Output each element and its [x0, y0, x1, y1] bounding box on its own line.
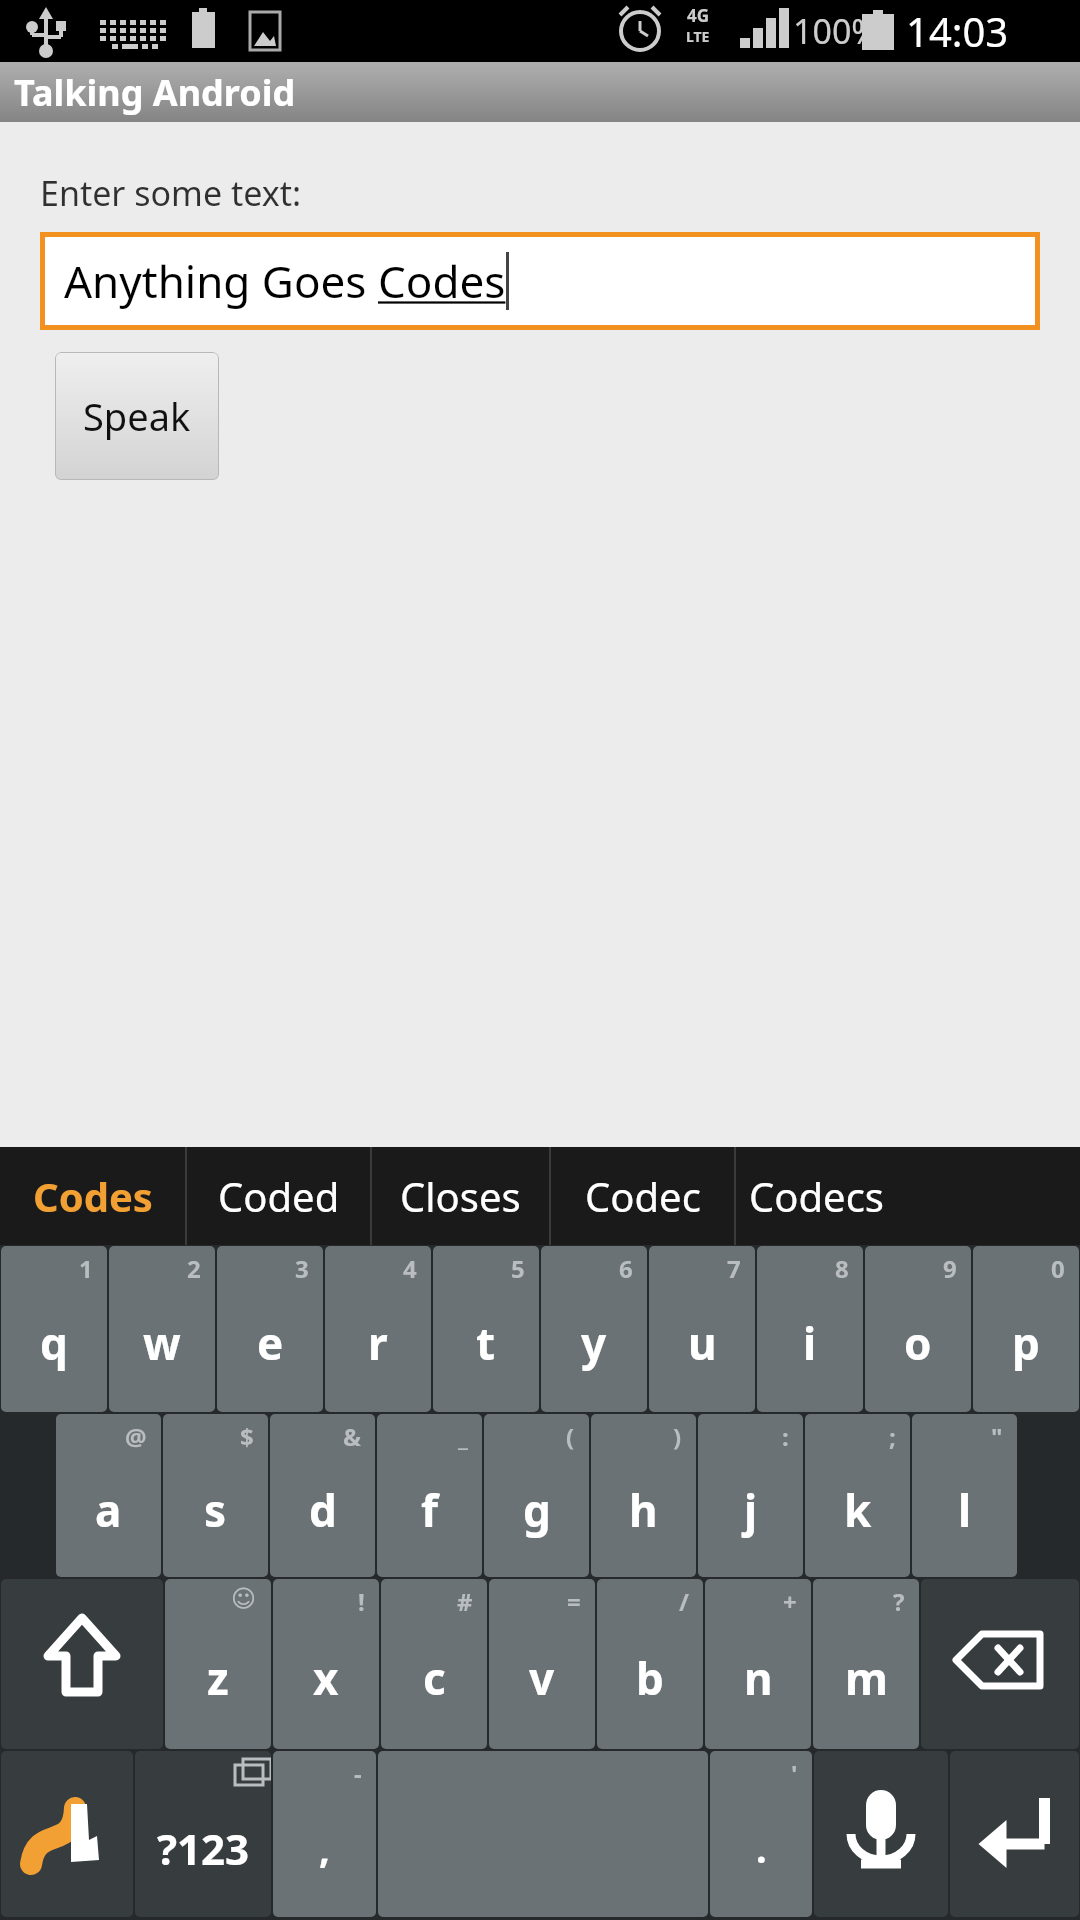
button[interactable]: $: [163, 1414, 268, 1577]
button[interactable]: Coded: [187, 1147, 370, 1245]
staticText: ': [791, 1757, 798, 1790]
button[interactable]: -: [273, 1751, 376, 1917]
staticText: Closes: [400, 1169, 521, 1223]
staticText: v: [529, 1648, 555, 1708]
staticText: d: [309, 1480, 337, 1540]
staticText: t: [476, 1313, 496, 1373]
button[interactable]: Shift: [1, 1579, 163, 1749]
button[interactable]: Codec: [551, 1147, 734, 1245]
button[interactable]: Backspace: [921, 1579, 1079, 1749]
button[interactable]: +: [705, 1579, 811, 1749]
staticText: (: [566, 1420, 575, 1453]
staticText: z: [207, 1648, 229, 1708]
button[interactable]: !: [273, 1579, 379, 1749]
staticText: 7: [727, 1252, 741, 1285]
staticText: LTE: [686, 27, 710, 46]
button[interactable]: ☺: [165, 1579, 271, 1749]
button[interactable]: 7: [649, 1246, 755, 1412]
staticText: Codec: [585, 1169, 701, 1223]
staticText: 2: [187, 1252, 201, 1285]
button[interactable]: 6: [541, 1246, 647, 1412]
button[interactable]: Swipe input: [1, 1751, 133, 1917]
button[interactable]: ': [710, 1751, 812, 1917]
button[interactable]: Codecs: [736, 1147, 896, 1245]
staticText: ): [673, 1420, 682, 1453]
staticText: r: [368, 1313, 388, 1373]
staticText: !: [358, 1585, 365, 1618]
staticText: 100%: [793, 8, 880, 54]
staticText: Codes: [33, 1169, 153, 1223]
staticText: Codes: [378, 251, 506, 311]
staticText: /: [679, 1585, 689, 1618]
staticText: 4: [403, 1252, 417, 1285]
button[interactable]: Anything Goes: [40, 232, 1040, 330]
staticText: u: [688, 1313, 717, 1373]
button[interactable]: 1: [1, 1246, 107, 1412]
staticText: b: [636, 1648, 664, 1708]
staticText: n: [744, 1648, 773, 1708]
staticText: ": [991, 1420, 1003, 1453]
button[interactable]: 5: [433, 1246, 539, 1412]
staticText: f: [421, 1480, 439, 1540]
staticText: k: [844, 1480, 872, 1540]
staticText: &: [343, 1420, 361, 1453]
staticText: Talking Android: [14, 68, 296, 117]
staticText: 14:03: [906, 4, 1009, 58]
staticText: a: [95, 1480, 122, 1540]
button[interactable]: Closes: [372, 1147, 549, 1245]
staticText: m: [845, 1648, 888, 1708]
button[interactable]: #: [381, 1579, 487, 1749]
staticText: @: [125, 1420, 147, 1453]
staticText: 4G: [687, 4, 710, 27]
staticText: q: [40, 1313, 68, 1373]
staticText: Enter some text:: [40, 170, 302, 216]
button[interactable]: ;: [805, 1414, 910, 1577]
staticText: 5: [511, 1252, 525, 1285]
staticText: ,: [319, 1822, 330, 1874]
staticText: Speak: [83, 390, 191, 442]
staticText: g: [523, 1480, 551, 1540]
staticText: e: [257, 1313, 284, 1373]
staticText: ?: [893, 1585, 905, 1618]
staticText: j: [744, 1480, 758, 1540]
staticText: :: [782, 1420, 789, 1453]
button[interactable]: 4: [325, 1246, 431, 1412]
staticText: ?123: [157, 1820, 250, 1877]
button[interactable]: _: [377, 1414, 482, 1577]
staticText: w: [143, 1313, 181, 1373]
button[interactable]: ?: [813, 1579, 919, 1749]
button[interactable]: 3: [217, 1246, 323, 1412]
button[interactable]: Voice input: [814, 1751, 948, 1917]
button[interactable]: @: [56, 1414, 161, 1577]
staticText: x: [313, 1648, 339, 1708]
staticText: c: [423, 1648, 446, 1708]
button[interactable]: Enter: [950, 1751, 1079, 1917]
button[interactable]: ": [912, 1414, 1017, 1577]
staticText: Anything Goes: [64, 251, 378, 311]
staticText: +: [783, 1585, 797, 1618]
button[interactable]: /: [597, 1579, 703, 1749]
staticText: _: [458, 1420, 468, 1453]
staticText: .: [756, 1822, 767, 1874]
button[interactable]: :: [698, 1414, 803, 1577]
button[interactable]: 8: [757, 1246, 863, 1412]
button[interactable]: 9: [865, 1246, 971, 1412]
button[interactable]: ): [591, 1414, 696, 1577]
staticText: o: [904, 1313, 932, 1373]
button[interactable]: &: [270, 1414, 375, 1577]
staticText: =: [567, 1585, 581, 1618]
button[interactable]: 0: [973, 1246, 1079, 1412]
button[interactable]: =: [489, 1579, 595, 1749]
button[interactable]: ?123: [135, 1751, 271, 1917]
staticText: i: [803, 1313, 817, 1373]
staticText: Codecs: [749, 1169, 884, 1223]
button[interactable]: 2: [109, 1246, 215, 1412]
button[interactable]: Codes: [0, 1147, 185, 1245]
staticText: Coded: [218, 1169, 340, 1223]
staticText: $: [240, 1420, 254, 1453]
staticText: 9: [943, 1252, 957, 1285]
button[interactable]: (: [484, 1414, 589, 1577]
button[interactable]: Speak: [55, 352, 219, 480]
staticText: 8: [835, 1252, 849, 1285]
